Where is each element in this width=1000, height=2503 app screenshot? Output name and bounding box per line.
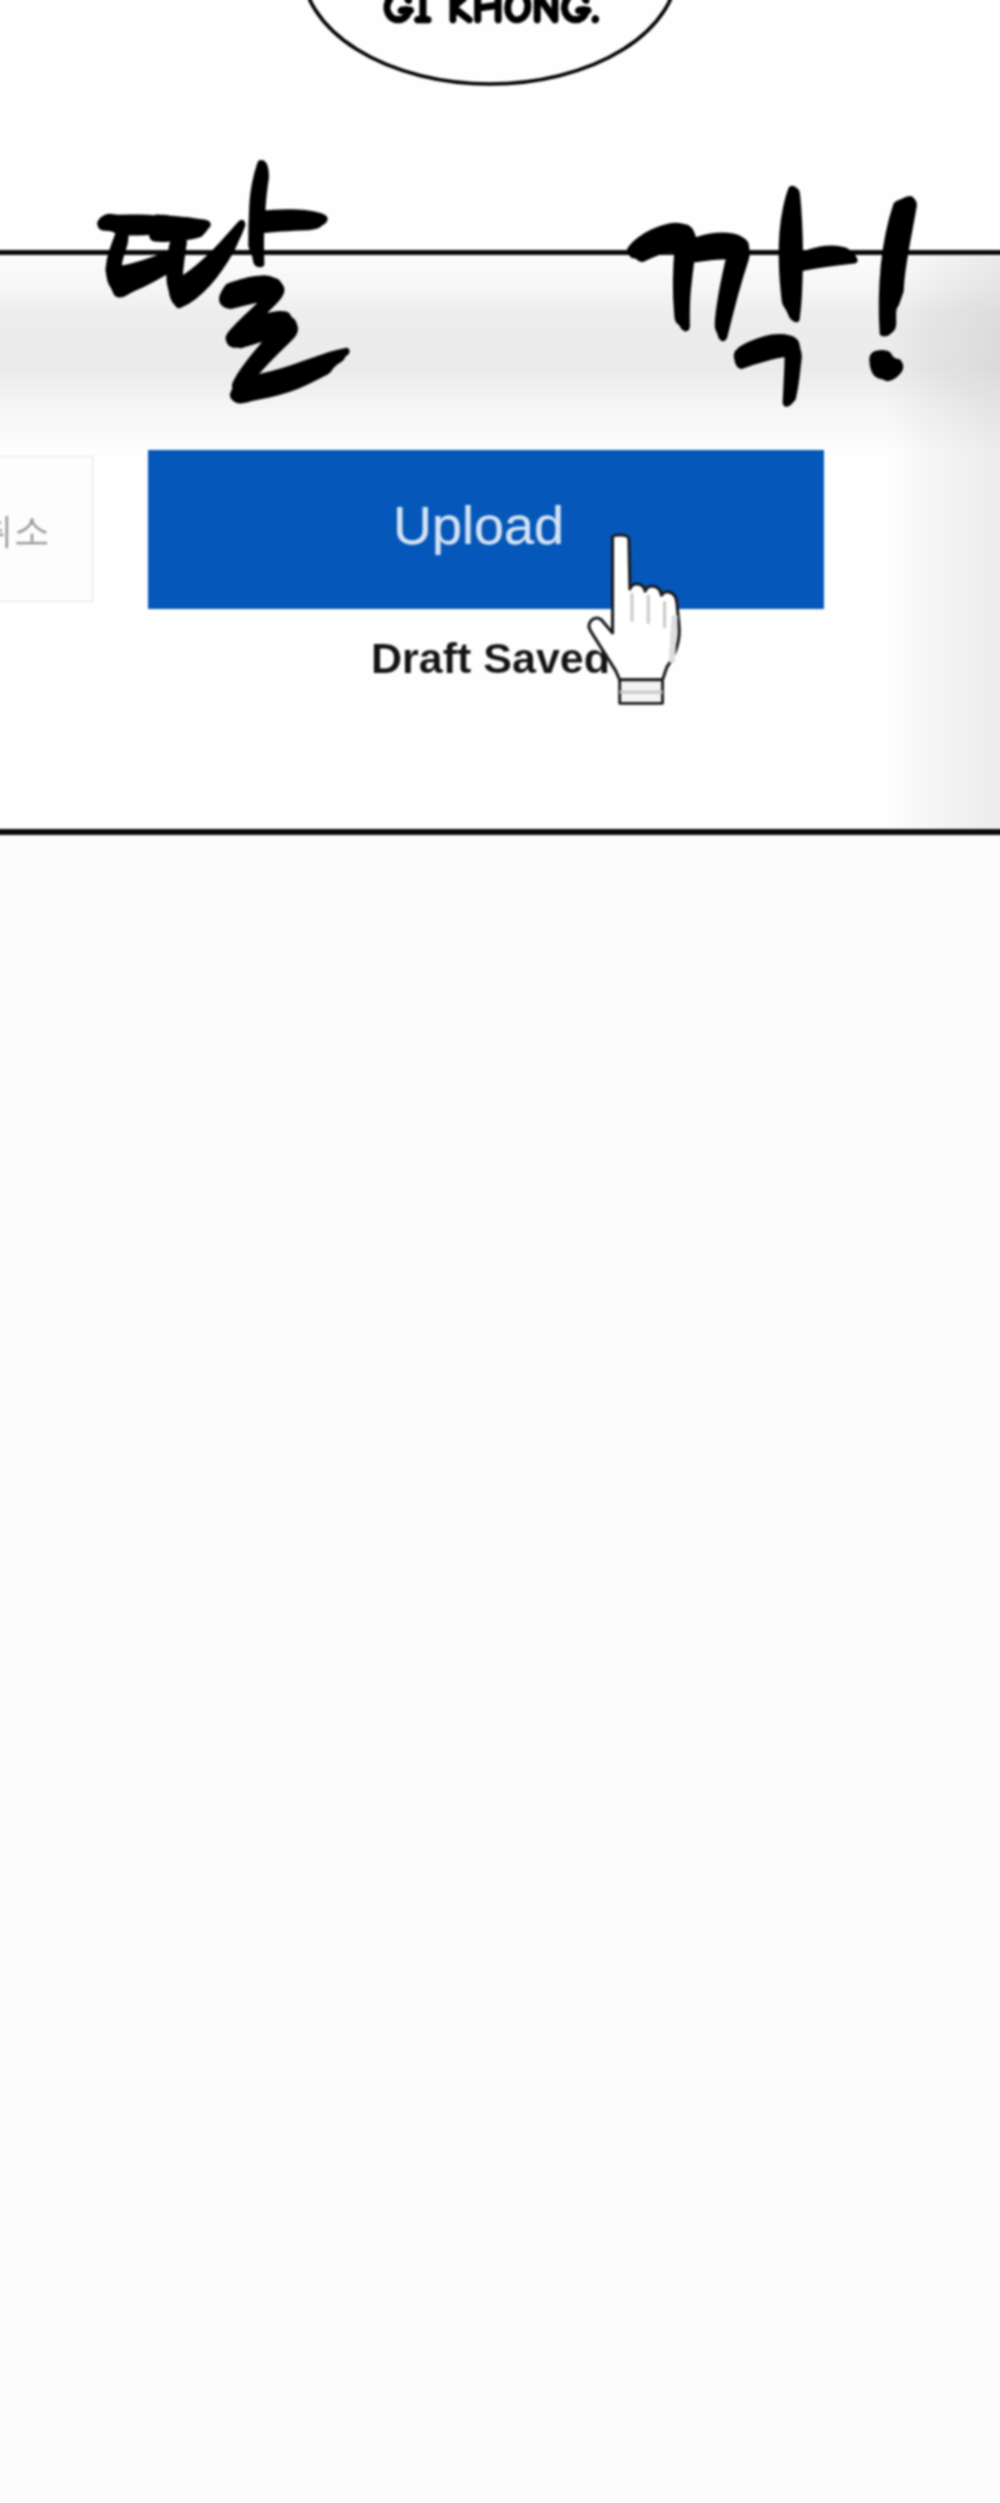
- button[interactable]: Cancel: [0, 456, 93, 602]
- staticText: 딸: [99, 158, 325, 426]
- staticText: Upload: [393, 495, 565, 555]
- staticText: Draft Saved: [371, 634, 610, 682]
- staticText: 딸: [99, 158, 325, 426]
- staticText: 깍!: [628, 170, 931, 458]
- staticText: GÌ KHÔNG.: [383, 0, 600, 33]
- staticText: 취소: [0, 508, 50, 553]
- staticText: 깍!: [628, 170, 931, 458]
- staticText: GÌ KHÔNG.: [383, 0, 600, 33]
- button[interactable]: Upload: [148, 450, 824, 609]
